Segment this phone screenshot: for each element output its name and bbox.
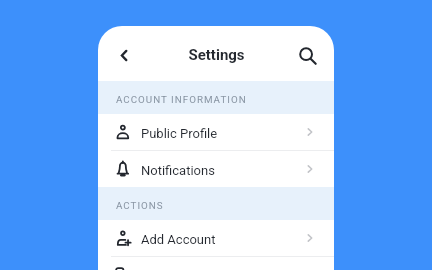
staticText: Settings	[188, 46, 245, 64]
staticText: ACCOUNT INFORMATION	[116, 94, 247, 105]
staticText: ACTIONS	[116, 200, 164, 211]
button[interactable]: Search	[294, 39, 324, 69]
staticText: Notifications	[141, 163, 215, 178]
button[interactable]: Back	[108, 39, 138, 69]
button[interactable]: Public Profile	[98, 114, 334, 150]
button[interactable]: Log Out	[98, 257, 334, 270]
staticText: Public Profile	[141, 126, 218, 141]
button[interactable]: Notifications	[98, 151, 334, 187]
staticText: Add Account	[141, 232, 216, 247]
button[interactable]: Add Account	[98, 220, 334, 256]
